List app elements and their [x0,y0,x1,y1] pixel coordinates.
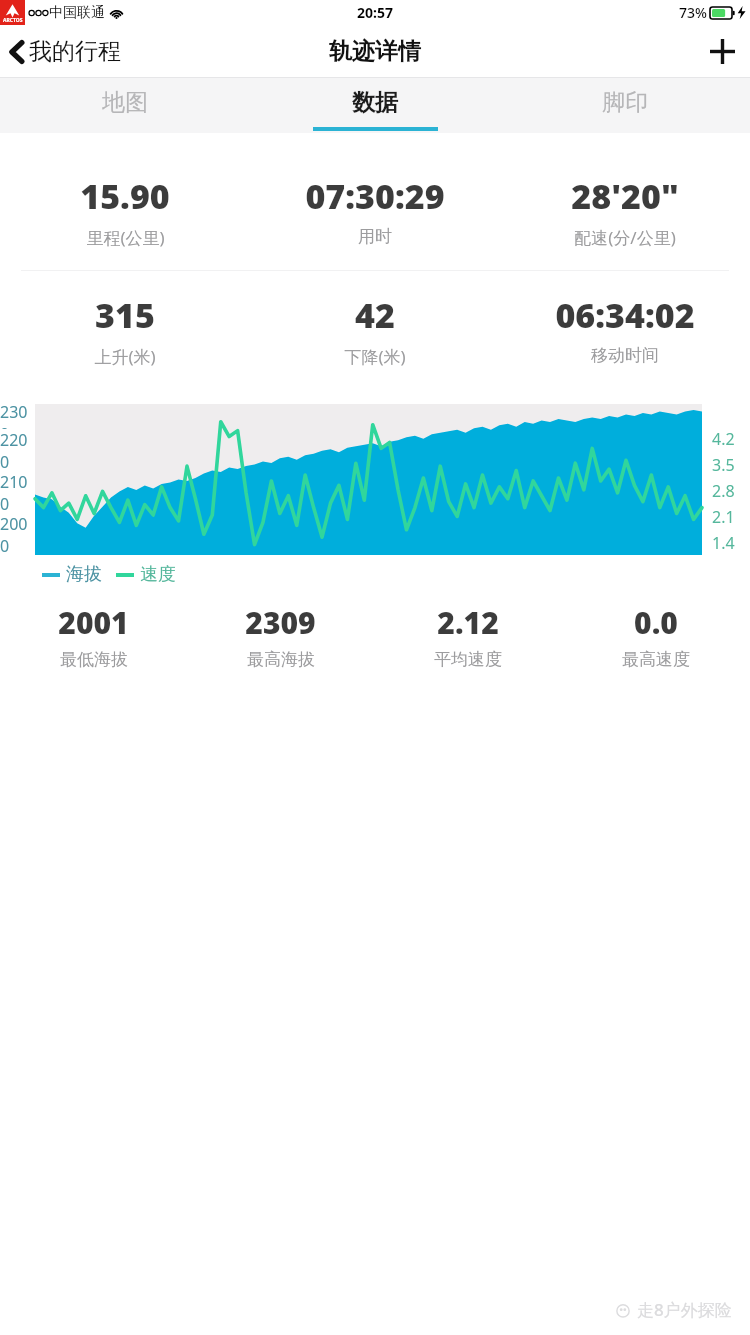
staticText: 42 [355,292,395,338]
staticText: 20:57 [357,3,393,22]
staticText: ARCTOS [3,17,23,24]
staticText: 2.1 [712,506,735,528]
staticText: 上升(米) [94,345,156,368]
button[interactable]: Add [695,30,750,73]
staticText: 3.5 [712,454,735,476]
staticText: 地图 [102,88,148,117]
button[interactable]: 脚印 [500,78,750,133]
staticText: 海拔 [66,563,102,586]
button[interactable]: 我的行程 [0,31,133,72]
staticText: 2300 [0,401,31,429]
staticText: 15.90 [80,173,170,219]
staticText: 走8户外探险 [637,1298,732,1321]
staticText: 315 [95,292,155,338]
staticText: 2100 [0,471,31,513]
staticText: 我的行程 [29,37,121,66]
staticText: 28'20" [571,173,679,219]
staticText: 最低海拔 [60,649,128,670]
staticText: 中国联通 [49,4,105,22]
staticText: 2000 [0,513,31,555]
staticText: 最高海拔 [247,649,315,670]
staticText: 用时 [358,226,392,247]
staticText: 2.8 [712,480,735,502]
staticText: 里程(公里) [86,226,165,249]
staticText: 2309 [245,602,316,643]
staticText: 73% [679,3,707,22]
staticText: 4.2 [712,428,735,450]
staticText: 1.4 [712,532,735,554]
staticText: 平均速度 [434,649,502,670]
staticText: 2200 [0,429,31,471]
staticText: 06:34:02 [555,292,695,338]
staticText: 速度 [140,563,176,586]
staticText: 配速(分/公里) [574,226,676,249]
staticText: 07:30:29 [305,173,445,219]
staticText: 移动时间 [591,345,659,366]
staticText: 2001 [58,602,129,643]
staticText: 下降(米) [344,345,406,368]
button[interactable]: 地图 [0,78,250,133]
staticText: 2.12 [437,602,499,643]
button[interactable]: 数据 [250,78,500,133]
staticText: 轨迹详情 [329,37,421,66]
staticText: 0.0 [634,602,678,643]
staticText: 数据 [352,88,398,117]
staticText: 最高速度 [622,649,690,670]
staticText: 脚印 [602,88,648,117]
